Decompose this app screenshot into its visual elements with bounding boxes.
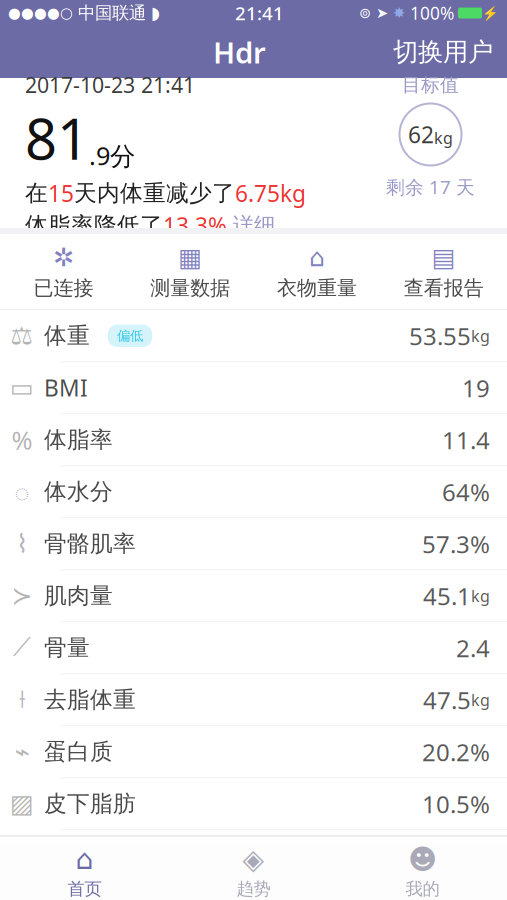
staticText: 21:41 (235, 1, 284, 25)
button[interactable]: ▤ (380, 234, 507, 309)
staticText: ✲ (53, 243, 74, 272)
button[interactable]: ▨ (0, 778, 507, 830)
staticText: 在 (25, 179, 48, 207)
staticText: ⟊ (19, 687, 25, 712)
staticText: 19 (462, 372, 490, 404)
staticText: ◗ (151, 3, 160, 23)
staticText: ⌇ (16, 529, 28, 558)
staticText: ✸ (393, 5, 410, 21)
button[interactable]: ⌇ (0, 518, 507, 570)
staticText: ▦ (178, 243, 202, 272)
button[interactable]: ◎ (0, 882, 507, 900)
button[interactable]: ◌ (0, 466, 507, 518)
staticText: 肌肉量 (44, 582, 113, 610)
staticText: 100% (410, 1, 454, 24)
staticText: 81 (25, 101, 89, 175)
staticText: 2.4 (456, 632, 490, 664)
staticText: 20.2% (422, 736, 490, 768)
button[interactable]: ✲ (0, 234, 127, 309)
button[interactable]: ⚖ (0, 310, 507, 362)
staticText: 衣物重量 (277, 276, 357, 300)
staticText: 已连接 (33, 276, 93, 300)
staticText: 中国联通 (73, 2, 151, 24)
staticText: 62 (408, 119, 434, 149)
staticText: 趋势 (236, 878, 270, 899)
staticText: % (11, 423, 32, 457)
staticText: 去脂体重 (44, 686, 136, 714)
staticText: ⟋ (13, 635, 31, 660)
staticText: ⌁ (14, 737, 29, 766)
staticText: 骨骼肌率 (44, 530, 136, 558)
staticText: 53.55 (409, 320, 471, 352)
staticText: 基础代谢 (44, 894, 136, 900)
button[interactable]: % (0, 414, 507, 466)
staticText: 体脂率降低了 (25, 211, 163, 239)
staticText: 15 (48, 178, 74, 208)
staticText: 47.5 (423, 684, 471, 716)
button[interactable]: ⌂ (253, 234, 380, 309)
button[interactable]: ▭ (0, 362, 507, 414)
staticText: 首页 (67, 878, 101, 899)
staticText: 1520 (404, 892, 460, 900)
button[interactable]: ⟊ (0, 674, 507, 726)
staticText: 偏低 (117, 328, 143, 344)
button[interactable]: ◈ (169, 843, 338, 900)
staticText: 骨量 (44, 634, 90, 662)
staticText: ⊚ ➤ (359, 5, 393, 21)
button[interactable]: ☻ (338, 843, 507, 900)
staticText: 11.4 (442, 424, 490, 456)
staticText: ▭ (10, 373, 34, 402)
staticText: .9分 (89, 139, 135, 172)
staticText: 13.3% (163, 210, 227, 240)
button[interactable]: ⌂ (0, 843, 169, 900)
staticText: ⌂ (75, 843, 93, 875)
button[interactable]: ▦ (127, 234, 254, 309)
button[interactable]: ⌁ (0, 726, 507, 778)
staticText: ▨ (10, 789, 34, 818)
button[interactable]: ⟋ (0, 622, 507, 674)
staticText: kg (471, 325, 490, 346)
staticText: kg (471, 689, 490, 710)
staticText: Hdr (213, 32, 266, 71)
button[interactable]: ◍ (0, 830, 507, 882)
staticText: 切换用户 (393, 36, 493, 67)
staticText: 天内体重减少了 (74, 179, 235, 207)
staticText: 57.3% (422, 528, 490, 560)
staticText: ⚖ (10, 321, 33, 350)
staticText: ◈ (242, 843, 264, 875)
staticText: 内脏脂肪等级 (44, 842, 182, 870)
staticText: 测量数据 (150, 276, 230, 300)
staticText: 6.75kg (235, 178, 306, 208)
staticText: 详细 (227, 212, 275, 238)
staticText: kg (434, 127, 453, 148)
button[interactable]: 详细 (227, 212, 275, 238)
staticText: 皮下脂肪 (44, 790, 136, 818)
staticText: ☻ (408, 843, 437, 875)
staticText: ⚡ (482, 5, 499, 21)
staticText: 蛋白质 (44, 738, 113, 766)
staticText: ●●●●○ (8, 5, 73, 21)
staticText: 45.1 (423, 580, 471, 612)
button[interactable]: ≻ (0, 570, 507, 622)
staticText: ≻ (11, 581, 32, 610)
staticText: 2017-10-23 21:41 (25, 71, 195, 99)
staticText: ⌂ (309, 243, 325, 272)
staticText: 目标值 (402, 74, 459, 96)
staticText: 我的 (405, 878, 439, 899)
button[interactable]: 切换用户 (379, 28, 507, 75)
staticText: 体脂率 (44, 426, 113, 454)
staticText: 体水分 (44, 478, 113, 506)
staticText: kg (471, 585, 490, 606)
staticText: 剩余 17 天 (386, 174, 475, 199)
staticText: 体重 (44, 322, 90, 350)
staticText: BMI (44, 373, 88, 403)
staticText: 查看报告 (404, 276, 484, 300)
staticText: ▤ (432, 243, 456, 272)
staticText: ◌ (14, 475, 29, 509)
staticText: 10.5% (422, 788, 490, 820)
staticText: 64% (442, 476, 490, 508)
